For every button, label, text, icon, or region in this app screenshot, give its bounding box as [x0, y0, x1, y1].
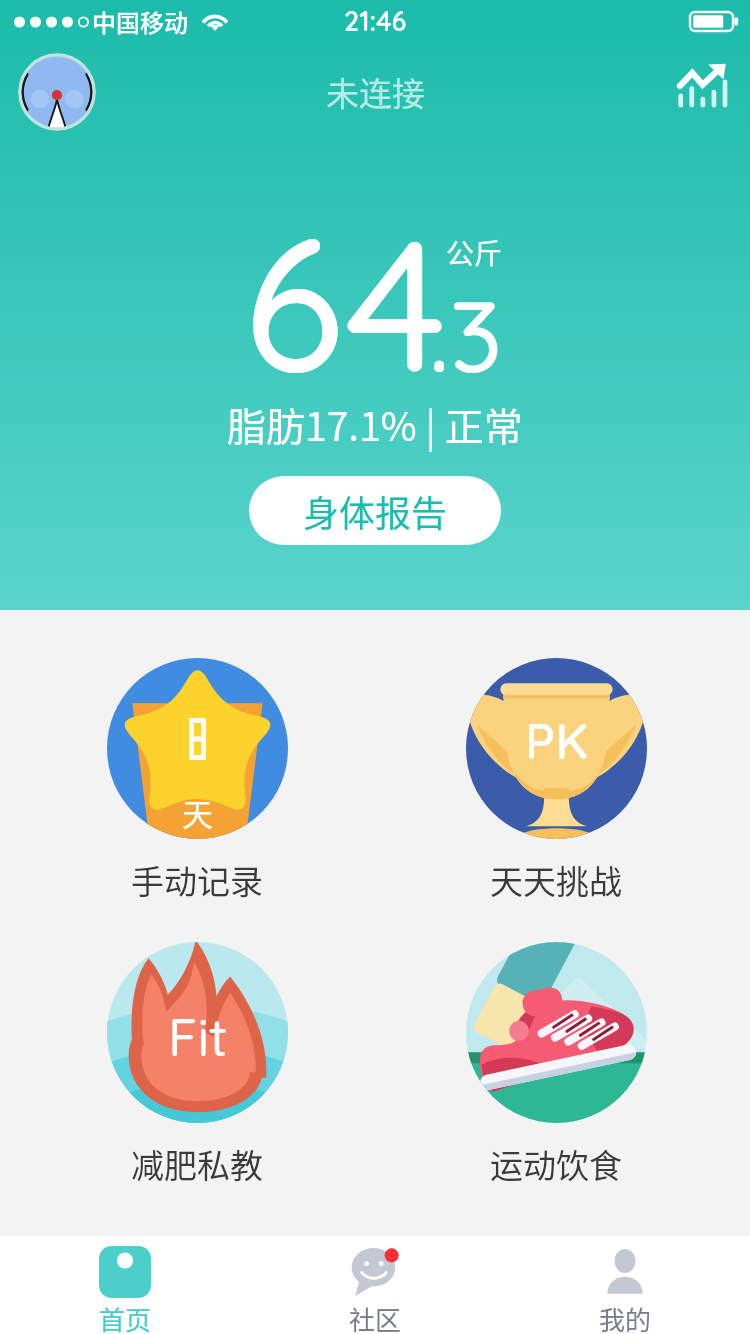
button[interactable]: 社区 [250, 1236, 500, 1334]
button[interactable]: 我的 [500, 1236, 750, 1334]
button[interactable]: PK [441, 658, 671, 904]
button[interactable]: Fit [82, 942, 312, 1188]
staticText: 首页 [99, 1300, 152, 1334]
staticText: PK [525, 709, 589, 772]
staticText: 运动饮食 [490, 1140, 622, 1188]
staticText: 我的 [599, 1300, 652, 1334]
button[interactable]: 首页 [0, 1236, 250, 1334]
staticText: 中国移动 [92, 4, 188, 39]
staticText: 社区 [349, 1300, 402, 1334]
staticText: 减肥私教 [131, 1140, 263, 1188]
staticText: 未连接 [326, 68, 425, 116]
button[interactable]: Profile avatar [18, 53, 96, 131]
staticText: 手动记录 [131, 856, 263, 904]
button[interactable]: 运动饮食 [441, 942, 671, 1188]
button[interactable]: 身体报告 [249, 476, 501, 545]
button[interactable]: Trend chart [674, 60, 728, 114]
staticText: 21:46 [344, 4, 407, 38]
staticText: 身体报告 [303, 485, 448, 537]
button[interactable]: 天 [82, 658, 312, 904]
staticText: Fit [168, 1004, 228, 1069]
staticText: 天 [182, 790, 213, 835]
staticText: 64 [243, 186, 447, 417]
staticText: 公斤 [446, 232, 503, 273]
staticText: .3 [429, 272, 503, 397]
staticText: 天天挑战 [490, 856, 622, 904]
staticText: 脂肪17.1% | 正常 [227, 396, 523, 452]
